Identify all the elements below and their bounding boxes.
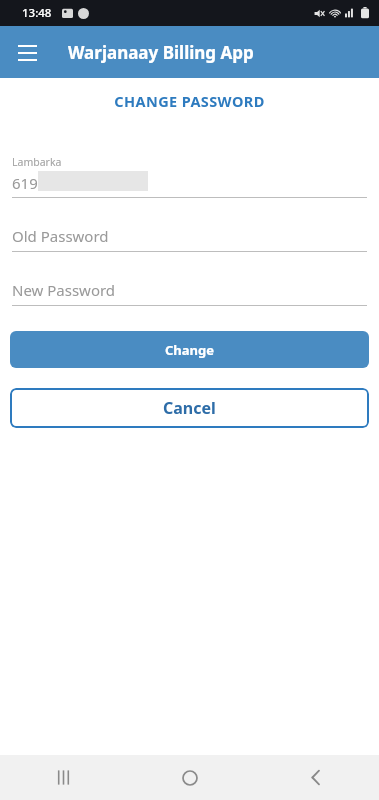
button[interactable]: Change	[10, 331, 369, 368]
staticText: Lambarka	[12, 155, 62, 169]
staticText: Warjanaay Billing App	[68, 41, 254, 64]
button[interactable]: Back	[253, 755, 379, 800]
staticText: Cancel	[163, 397, 216, 419]
staticText: New Password	[12, 280, 116, 300]
button[interactable]: Recents	[0, 755, 127, 800]
button[interactable]: Open navigation menu	[10, 35, 44, 69]
staticText: Change	[165, 341, 215, 359]
staticText: 13:48	[22, 5, 52, 21]
button[interactable]: Home	[127, 755, 253, 800]
button[interactable]: Cancel	[10, 388, 369, 428]
staticText: Old Password	[12, 226, 109, 246]
staticText: CHANGE PASSWORD	[114, 91, 265, 111]
staticText: 619	[12, 173, 38, 193]
